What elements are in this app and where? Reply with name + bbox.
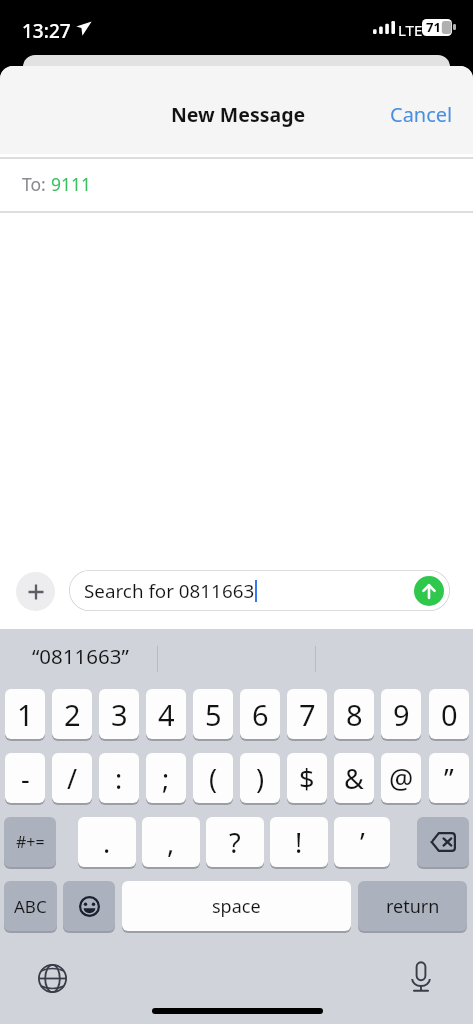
- staticText: 9111: [51, 172, 92, 196]
- staticText: 8: [346, 695, 363, 734]
- staticText: ABC: [14, 895, 47, 918]
- staticText: ”: [444, 760, 454, 797]
- button[interactable]: Emoji: [63, 881, 115, 931]
- button[interactable]: 2: [52, 689, 92, 739]
- button[interactable]: Search for 0811663: [69, 570, 450, 611]
- button[interactable]: 4: [146, 689, 186, 739]
- staticText: space: [212, 894, 261, 919]
- staticText: 6: [252, 695, 269, 734]
- staticText: 4: [158, 695, 175, 734]
- button[interactable]: ?: [206, 817, 264, 867]
- button[interactable]: .: [78, 817, 136, 867]
- button[interactable]: Dictate: [403, 959, 439, 995]
- staticText: “0811663”: [32, 642, 129, 670]
- staticText: Cancel: [390, 101, 453, 128]
- button[interactable]: 7: [287, 689, 327, 739]
- button[interactable]: 1: [5, 689, 45, 739]
- staticText: (: [209, 760, 218, 797]
- button[interactable]: Delete: [417, 817, 469, 867]
- button[interactable]: 0: [429, 689, 469, 739]
- button[interactable]: 5: [193, 689, 233, 739]
- button[interactable]: Add attachment: [16, 572, 55, 611]
- staticText: -: [21, 760, 30, 797]
- staticText: !: [295, 824, 303, 861]
- staticText: 9: [393, 695, 410, 734]
- staticText: $: [299, 760, 315, 797]
- button[interactable]: 9: [381, 689, 421, 739]
- staticText: 5: [205, 695, 222, 734]
- staticText: 7: [299, 695, 316, 734]
- button[interactable]: Cancel: [370, 93, 473, 136]
- button[interactable]: (: [193, 753, 233, 803]
- button[interactable]: ;: [146, 753, 186, 803]
- staticText: 2: [64, 695, 81, 734]
- staticText: New Message: [171, 101, 306, 128]
- button[interactable]: 3: [99, 689, 139, 739]
- button[interactable]: 8: [334, 689, 374, 739]
- button[interactable]: ABC: [4, 881, 57, 931]
- button[interactable]: To:: [0, 154, 473, 213]
- button[interactable]: &: [334, 753, 374, 803]
- staticText: :: [115, 760, 123, 797]
- button[interactable]: @: [381, 753, 421, 803]
- button[interactable]: Send: [414, 576, 444, 606]
- staticText: 0: [441, 695, 458, 734]
- button[interactable]: /: [52, 753, 92, 803]
- button[interactable]: Change keyboard language: [34, 960, 70, 996]
- button[interactable]: #+=: [4, 817, 56, 867]
- staticText: 71: [426, 18, 441, 35]
- staticText: return: [386, 894, 440, 919]
- button[interactable]: ’: [334, 817, 390, 867]
- staticText: ?: [229, 824, 241, 861]
- button[interactable]: ): [240, 753, 280, 803]
- button[interactable]: ,: [142, 817, 200, 867]
- button[interactable]: ”: [429, 753, 469, 803]
- staticText: ’: [360, 824, 365, 861]
- staticText: /: [67, 760, 78, 797]
- button[interactable]: $: [287, 753, 327, 803]
- staticText: &: [344, 760, 364, 797]
- staticText: 13:27: [22, 18, 71, 44]
- staticText: ;: [162, 760, 170, 797]
- button[interactable]: 6: [240, 689, 280, 739]
- staticText: 1: [17, 695, 34, 734]
- button[interactable]: :: [99, 753, 139, 803]
- button[interactable]: -: [5, 753, 45, 803]
- staticText: To:: [22, 172, 51, 196]
- staticText: 3: [111, 695, 128, 734]
- staticText: Search for 0811663: [84, 578, 255, 604]
- button[interactable]: return: [358, 881, 467, 931]
- staticText: ): [256, 760, 265, 797]
- button[interactable]: !: [270, 817, 328, 867]
- staticText: .: [103, 824, 111, 861]
- staticText: @: [389, 760, 414, 797]
- button[interactable]: space: [122, 881, 351, 931]
- staticText: ,: [167, 824, 175, 861]
- staticText: LTE: [398, 20, 423, 40]
- staticText: #+=: [16, 831, 45, 853]
